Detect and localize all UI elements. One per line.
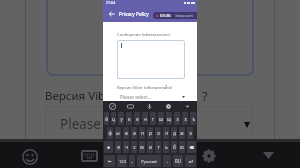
staticText: а [133,130,136,136]
button[interactable]: ъ [190,112,196,125]
button[interactable]: ш [158,112,164,125]
button[interactable]: е [134,112,140,125]
button[interactable]: Settings [159,101,178,111]
button[interactable]: 03:36 [153,12,197,19]
button[interactable]: с [131,141,137,153]
staticText: р [149,130,152,136]
button[interactable]: ь [163,141,169,153]
button[interactable]: Back [106,8,117,19]
staticText: ц [112,116,115,122]
staticText: м [140,144,144,150]
staticText: и [149,144,152,150]
button[interactable]: з [174,112,180,125]
staticText: ь [165,144,168,150]
staticText: ш [159,116,163,122]
button[interactable]: х [182,112,188,125]
button[interactable]: р [147,127,153,139]
button[interactable]: . [163,155,171,167]
staticText: Privacy Policy [119,11,149,17]
staticText: э [189,130,192,136]
button[interactable]: к [126,112,132,125]
staticText: Версия Viber (обязательно) [45,88,197,104]
staticText: п [141,130,144,136]
staticText: у [120,116,123,122]
staticText: л [165,130,168,136]
button[interactable]: у [118,112,124,125]
staticText: к [128,116,131,122]
button[interactable]: ж [179,127,185,139]
staticText: в [125,130,128,136]
staticText: з [176,116,179,122]
button[interactable]: щ [166,112,172,125]
button[interactable]: Русский [137,155,161,167]
staticText: . [166,158,168,164]
staticText: 03:36 [160,13,171,19]
staticText: , [131,158,133,164]
button[interactable]: о [155,127,161,139]
staticText: ? [165,84,167,90]
button[interactable]: ф [107,127,113,139]
staticText: д [173,130,176,136]
button[interactable]: , [129,155,135,167]
staticText: Сообщение (обязательно) [117,32,171,38]
staticText: ф [108,130,112,136]
button[interactable]: Voice input [140,101,159,111]
button[interactable]: в [123,127,129,139]
button[interactable]: GLOBE [104,155,115,167]
button[interactable]: ч [123,141,129,153]
staticText: Русский [141,159,157,164]
staticText: т [157,144,160,150]
button[interactable]: д [171,127,177,139]
staticText: ч [125,144,128,150]
button[interactable]: й [104,112,109,125]
button[interactable]: ц [111,112,116,125]
button[interactable]: б [171,141,177,153]
staticText: щ [167,116,171,122]
button[interactable]: а [131,127,137,139]
button[interactable]: ы [115,127,121,139]
staticText: о [157,130,160,136]
staticText: ы [116,130,120,136]
button[interactable]: ENTER [185,155,196,167]
staticText: 21:04 [106,0,116,5]
staticText: Завершить [175,13,194,18]
staticText: х [184,116,187,122]
button[interactable]: п [139,127,145,139]
button[interactable]: Translate [103,101,121,111]
button[interactable]: SHIFT [104,141,113,153]
staticText: ? [202,87,208,105]
staticText: ж [180,130,184,136]
staticText: 123 [119,159,126,164]
button[interactable]: 123 [117,155,127,167]
button[interactable]: э [187,127,193,139]
button[interactable]: More options [178,101,197,111]
staticText: я [117,144,120,150]
staticText: Please select... [60,115,152,133]
button[interactable]: я [115,141,121,153]
button[interactable]: л [163,127,169,139]
button[interactable]: г [150,112,156,125]
button[interactable]: BACKSPACE [187,141,196,153]
staticText: ю [180,144,184,150]
staticText: Версия Viber (обязательно) [117,85,173,91]
button[interactable]: Stickers [121,101,140,111]
button[interactable]: RU [173,155,183,167]
staticText: й [105,116,108,122]
staticText: RU [175,158,181,164]
button[interactable]: Please select... [117,92,185,101]
button[interactable]: т [155,141,161,153]
button[interactable]: н [142,112,148,125]
staticText: ъ [192,116,195,122]
staticText: б [173,144,176,150]
button[interactable]: и [147,141,153,153]
staticText: е [136,116,139,122]
staticText: н [144,116,147,122]
staticText: г [152,116,154,122]
button[interactable]: ю [179,141,185,153]
button[interactable]: м [139,141,145,153]
staticText: с [133,144,136,150]
staticText: Please select... [120,94,152,100]
